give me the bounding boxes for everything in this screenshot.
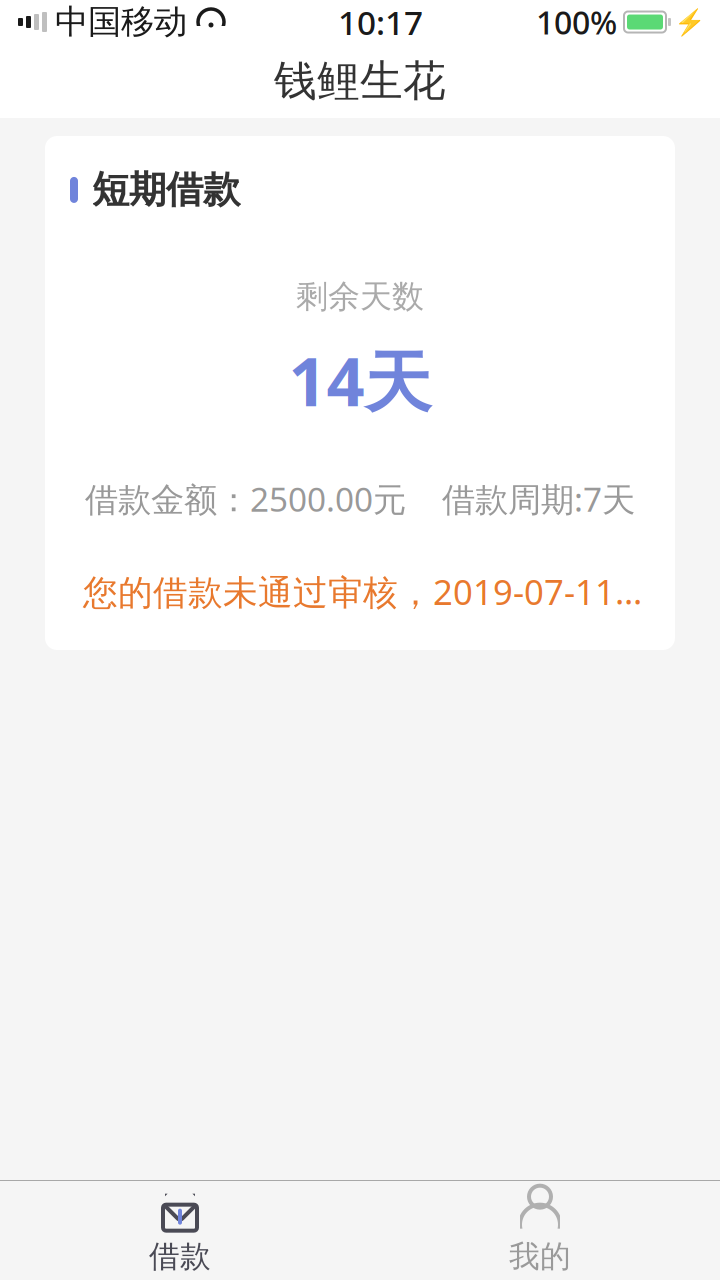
staticText: 100%	[536, 1, 617, 43]
button[interactable]: 我的	[360, 1181, 720, 1280]
staticText: 您的借款未通过审核，2019-07-11可再…	[83, 568, 667, 614]
button[interactable]: 借款	[0, 1181, 360, 1280]
staticText: 我的	[509, 1238, 571, 1275]
staticText: 短期借款	[92, 167, 240, 213]
staticText: 14天	[288, 336, 431, 425]
staticText: 借款金额：2500.00元	[85, 477, 406, 521]
staticText: 借款周期:7天	[442, 477, 635, 521]
staticText: 中国移动	[55, 1, 187, 42]
staticText: ⚡	[674, 7, 706, 36]
staticText: 借款	[149, 1238, 211, 1275]
staticText: 10:17	[338, 0, 423, 44]
staticText: 钱鲤生花	[274, 55, 446, 107]
staticText: 剩余天数	[296, 277, 424, 316]
